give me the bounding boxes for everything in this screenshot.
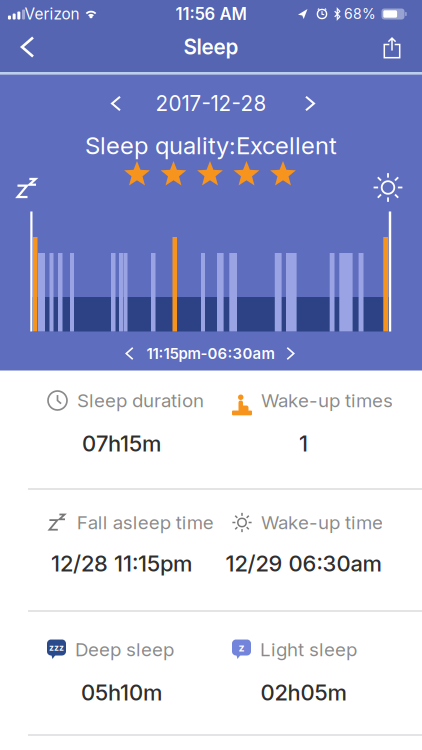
- button[interactable]: Share: [383, 37, 400, 58]
- button[interactable]: Back: [21, 36, 35, 57]
- staticText: 12/29 06:30am: [225, 550, 381, 577]
- staticText: z: [238, 641, 244, 654]
- button[interactable]: Later range: [285, 346, 297, 360]
- staticText: 05h10m: [81, 679, 162, 706]
- staticText: Light sleep: [260, 638, 357, 661]
- staticText: 2017-12-28: [155, 91, 266, 116]
- staticText: 1: [299, 430, 308, 457]
- staticText: 11:15pm-06:30am: [146, 344, 274, 363]
- staticText: 11:56 AM: [175, 4, 246, 24]
- button[interactable]: Previous day: [109, 95, 123, 111]
- button[interactable]: Next day: [303, 95, 317, 111]
- staticText: Verizon: [24, 5, 79, 23]
- staticText: zzz: [49, 642, 64, 653]
- staticText: Deep sleep: [75, 638, 174, 661]
- staticText: Sleep quality:Excellent: [85, 131, 337, 160]
- staticText: 12/28 11:15pm: [51, 550, 192, 577]
- staticText: Fall asleep time: [77, 511, 214, 534]
- staticText: 68%: [344, 5, 376, 22]
- staticText: Sleep: [183, 34, 238, 59]
- staticText: 02h05m: [260, 679, 346, 706]
- staticText: Wake-up time: [261, 511, 383, 534]
- staticText: 07h15m: [82, 430, 161, 457]
- staticText: Wake-up times: [261, 389, 393, 412]
- staticText: Sleep duration: [77, 389, 204, 412]
- button[interactable]: Earlier range: [124, 346, 136, 360]
